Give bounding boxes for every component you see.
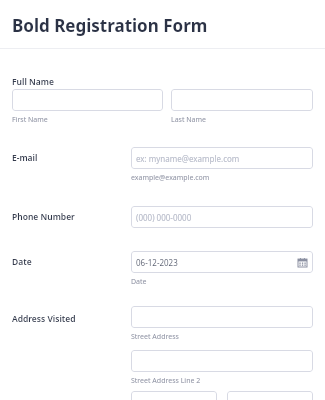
staticText: (000) 000-0000: [136, 212, 192, 223]
staticText: Street Address: [131, 332, 179, 342]
staticText: Date: [12, 256, 32, 268]
staticText: First Name: [12, 115, 48, 125]
staticText: E-mail: [12, 152, 38, 164]
button[interactable]: [12, 89, 163, 111]
button[interactable]: Open calendar: [296, 256, 308, 268]
staticText: example@example.com: [131, 173, 210, 183]
staticText: ex: myname@example.com: [136, 153, 240, 164]
staticText: Phone Number: [12, 211, 75, 223]
staticText: Street Address Line 2: [131, 376, 201, 386]
button[interactable]: [131, 391, 217, 400]
button[interactable]: [131, 350, 313, 372]
staticText: Date: [131, 277, 147, 287]
staticText: Full Name: [12, 76, 54, 88]
button[interactable]: 06-12-2023: [131, 251, 313, 273]
staticText: 06-12-2023: [136, 257, 178, 268]
staticText: Last Name: [171, 115, 207, 125]
button[interactable]: [227, 391, 313, 400]
staticText: Address Visited: [12, 313, 76, 325]
button[interactable]: ex: myname@example.com: [131, 147, 313, 169]
button[interactable]: (000) 000-0000: [131, 206, 313, 228]
staticText: Bold Registration Form: [12, 14, 208, 37]
button[interactable]: [171, 89, 313, 111]
button[interactable]: [131, 306, 313, 328]
